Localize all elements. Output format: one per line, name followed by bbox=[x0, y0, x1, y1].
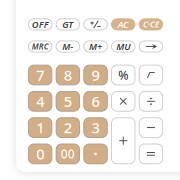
staticText: 6 bbox=[91, 92, 99, 111]
button[interactable]: MRC bbox=[28, 41, 52, 52]
button[interactable] bbox=[139, 41, 163, 52]
button[interactable]: 1 bbox=[28, 118, 52, 137]
button[interactable]: 3 bbox=[84, 118, 107, 137]
staticText: 9 bbox=[91, 65, 99, 85]
button[interactable]: M+ bbox=[84, 41, 107, 52]
staticText: OFF bbox=[32, 18, 49, 31]
staticText: GT bbox=[62, 18, 73, 31]
button[interactable] bbox=[139, 144, 163, 164]
button[interactable]: MU bbox=[111, 41, 135, 52]
staticText: AC bbox=[118, 18, 129, 31]
staticText: 2 bbox=[64, 118, 72, 137]
staticText: MU bbox=[116, 40, 130, 53]
button[interactable]: 4 bbox=[28, 91, 52, 111]
button[interactable]: 8 bbox=[56, 65, 80, 85]
button[interactable]: AC bbox=[111, 19, 135, 30]
button[interactable] bbox=[139, 118, 163, 137]
button[interactable]: 7 bbox=[28, 65, 52, 85]
button[interactable] bbox=[139, 91, 163, 111]
button[interactable]: 2 bbox=[56, 118, 80, 137]
staticText: 4 bbox=[36, 92, 44, 111]
button[interactable]: 5 bbox=[56, 91, 80, 111]
staticText: MRC bbox=[32, 41, 49, 52]
button[interactable] bbox=[111, 91, 135, 111]
staticText: 7 bbox=[36, 65, 44, 85]
button[interactable] bbox=[111, 118, 135, 164]
button[interactable] bbox=[84, 19, 107, 30]
staticText: 00 bbox=[61, 146, 75, 162]
button[interactable]: M− bbox=[56, 41, 80, 52]
staticText: 5 bbox=[64, 92, 72, 111]
button[interactable] bbox=[139, 65, 163, 85]
button[interactable]: GT bbox=[56, 19, 80, 30]
button[interactable]: % bbox=[111, 65, 135, 85]
button[interactable]: 00 bbox=[56, 144, 80, 164]
staticText: 3 bbox=[91, 118, 99, 137]
staticText: C·CE bbox=[143, 19, 159, 30]
staticText: M− bbox=[62, 40, 73, 53]
staticText: % bbox=[118, 67, 128, 83]
staticText: M+ bbox=[89, 40, 102, 53]
button[interactable]: C·CE bbox=[139, 19, 163, 30]
staticText: 8 bbox=[64, 65, 72, 85]
button[interactable] bbox=[84, 144, 107, 164]
button[interactable]: 9 bbox=[84, 65, 107, 85]
button[interactable]: OFF bbox=[28, 19, 52, 30]
staticText: 0 bbox=[36, 144, 44, 164]
button[interactable]: 6 bbox=[84, 91, 107, 111]
button[interactable]: 0 bbox=[28, 144, 52, 164]
staticText: 1 bbox=[36, 118, 44, 137]
